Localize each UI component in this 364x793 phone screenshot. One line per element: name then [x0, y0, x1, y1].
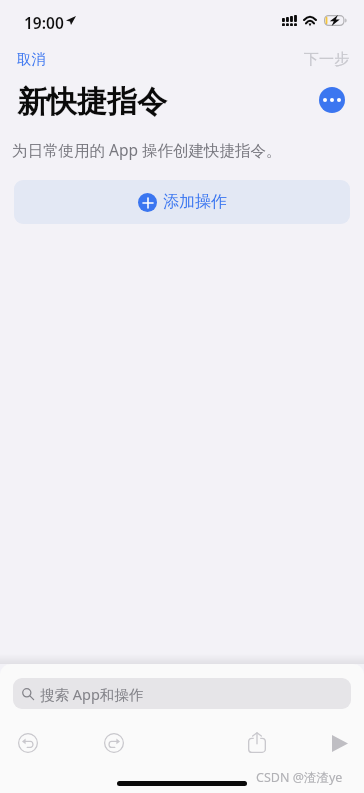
staticText: CSDN @渣渣ye: [256, 769, 343, 786]
button[interactable]: 搜索 App和操作: [13, 678, 351, 709]
button[interactable]: Share: [248, 732, 266, 753]
staticText: 下一步: [304, 50, 349, 69]
staticText: 新快捷指令: [17, 83, 167, 121]
button[interactable]: More options: [319, 87, 345, 113]
button[interactable]: 取消: [8, 46, 55, 72]
staticText: 搜索 App和操作: [40, 684, 144, 704]
staticText: 添加操作: [163, 192, 227, 212]
staticText: 取消: [17, 50, 46, 68]
button[interactable]: Redo: [104, 733, 124, 753]
button[interactable]: Play: [332, 735, 348, 752]
staticText: 19:00: [24, 12, 64, 33]
button[interactable]: 添加操作: [14, 180, 350, 224]
staticText: 为日常使用的 App 操作创建快捷指令。: [12, 139, 282, 160]
button[interactable]: Undo: [18, 733, 38, 753]
button[interactable]: 下一步: [295, 46, 358, 73]
